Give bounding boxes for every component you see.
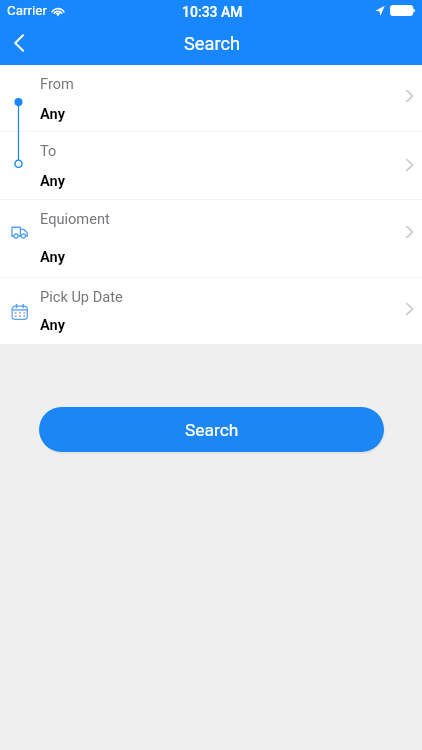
button[interactable]: Search	[39, 407, 384, 452]
button[interactable]: To	[0, 132, 422, 199]
staticText: Pick Up Date	[40, 288, 123, 305]
staticText: Search	[184, 33, 240, 54]
staticText: From	[40, 75, 74, 92]
button[interactable]: Back	[0, 21, 40, 65]
staticText: Any	[40, 105, 65, 122]
staticText: To	[40, 142, 57, 159]
staticText: 10:33 AM	[182, 4, 243, 20]
button[interactable]: Pick Up Date	[0, 278, 422, 344]
staticText: Search	[185, 420, 239, 440]
staticText: Carrier	[7, 3, 47, 19]
staticText: Any	[40, 316, 65, 333]
staticText: Equioment	[40, 210, 110, 227]
button[interactable]: From	[0, 65, 422, 131]
button[interactable]: Equioment	[0, 200, 422, 277]
staticText: Any	[40, 248, 65, 265]
staticText: Any	[40, 172, 65, 189]
